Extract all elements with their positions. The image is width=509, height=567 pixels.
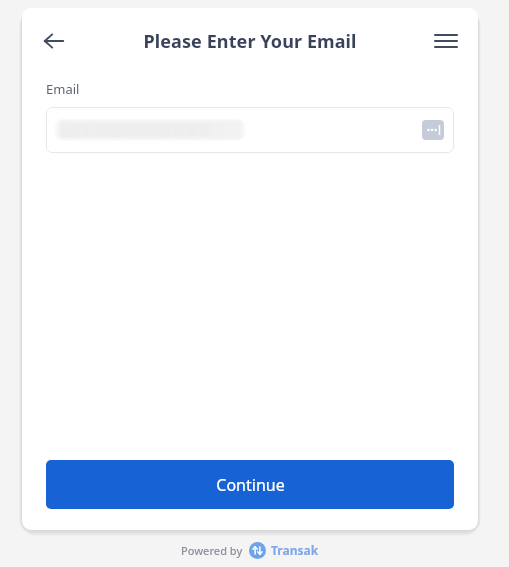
button[interactable]: Continue: [46, 460, 454, 509]
button[interactable]: Menu: [426, 21, 466, 61]
staticText: Email: [46, 80, 80, 98]
button[interactable]: Suggestions: [422, 120, 444, 140]
staticText: Transak: [271, 542, 319, 558]
staticText: Continue: [216, 474, 285, 496]
staticText: Powered by: [181, 543, 243, 558]
button[interactable]: Suggestions: [46, 107, 454, 153]
staticText: Please Enter Your Email: [143, 29, 357, 54]
button[interactable]: Back: [34, 21, 74, 61]
